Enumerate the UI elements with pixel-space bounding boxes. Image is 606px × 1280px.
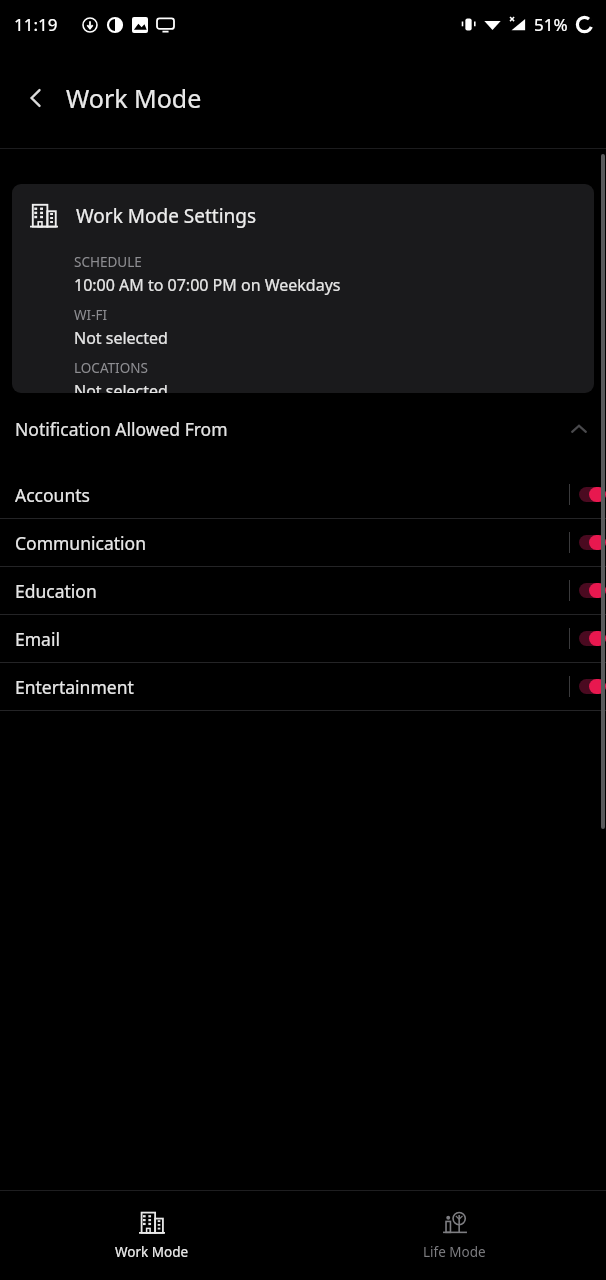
other: Collapse	[562, 412, 596, 446]
button[interactable]: Email	[0, 615, 606, 662]
button[interactable]: Education	[0, 567, 606, 614]
button[interactable]: Life Mode	[303, 1191, 606, 1280]
staticText: Entertainment	[15, 675, 134, 699]
button[interactable]: Notification Allowed From	[0, 409, 606, 449]
staticText: 10:00 AM to 07:00 PM on Weekdays	[74, 274, 341, 296]
staticText: Life Mode	[423, 1243, 486, 1261]
button[interactable]: Communication	[0, 519, 606, 566]
button[interactable]: Entertainment	[0, 663, 606, 710]
staticText: Not selected	[74, 327, 168, 349]
staticText: 51%	[534, 13, 568, 36]
button[interactable]: Back	[12, 74, 60, 122]
staticText: Education	[15, 579, 97, 603]
staticText: Email	[15, 627, 60, 651]
staticText: Not selected	[74, 380, 168, 393]
staticText: Communication	[15, 531, 146, 555]
staticText: Accounts	[15, 483, 90, 507]
staticText: LOCATIONS	[74, 359, 148, 377]
staticText: 11:19	[14, 13, 58, 36]
staticText: WI-FI	[74, 306, 108, 324]
staticText: Notification Allowed From	[15, 417, 228, 441]
button[interactable]: Accounts	[0, 471, 606, 518]
staticText: Work Mode	[115, 1243, 189, 1261]
staticText: SCHEDULE	[74, 253, 142, 271]
staticText: Work Mode	[66, 81, 202, 115]
button[interactable]: Work Mode	[0, 1191, 303, 1280]
staticText: Work Mode Settings	[76, 203, 257, 229]
button[interactable]: Work Mode Settings	[12, 184, 594, 393]
